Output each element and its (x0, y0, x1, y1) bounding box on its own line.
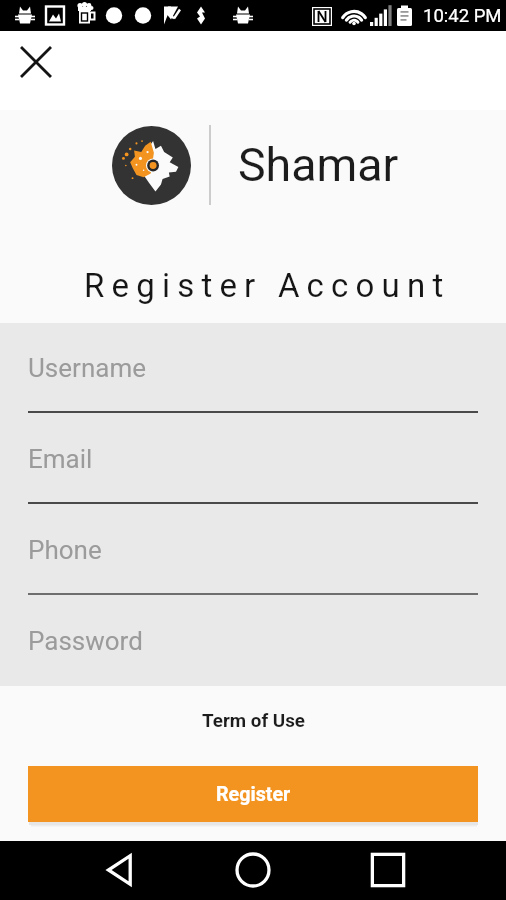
staticText: Phone (28, 535, 102, 565)
button[interactable]: Term of Use (192, 706, 315, 736)
staticText: Password (28, 626, 143, 656)
staticText: Shamar (238, 138, 399, 192)
staticText: Register Account (84, 266, 451, 305)
button[interactable]: Email (0, 414, 506, 505)
button[interactable]: Username (0, 323, 506, 414)
button[interactable]: Close (8, 34, 64, 90)
staticText: Term of Use (202, 710, 305, 732)
staticText: 10:42 PM (423, 5, 502, 27)
button[interactable]: Phone (0, 505, 506, 596)
button[interactable]: Password (0, 596, 506, 686)
staticText: Email (28, 444, 93, 474)
button[interactable]: Recents (364, 846, 412, 894)
button[interactable]: Register (28, 766, 478, 822)
button[interactable]: Home (229, 846, 277, 894)
staticText: Register (216, 783, 291, 806)
staticText: Username (28, 353, 146, 383)
button[interactable]: Back (96, 846, 144, 894)
